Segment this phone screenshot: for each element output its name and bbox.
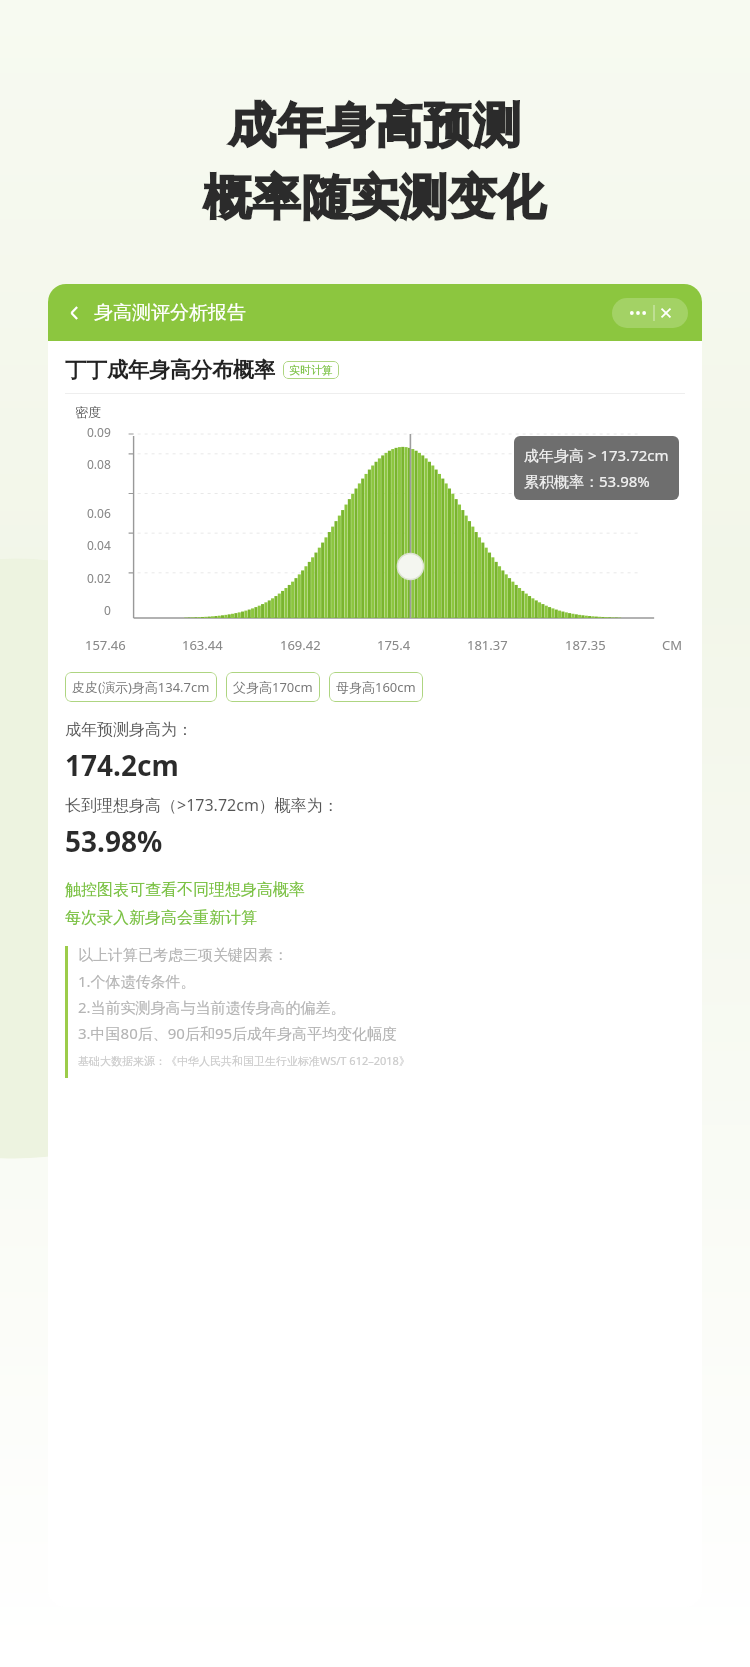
staticText: 成年身高预测 [0,96,750,156]
button[interactable]: More and Close [612,298,688,328]
staticText: 0 [104,602,111,618]
staticText: 身高测评分析报告 [94,301,246,325]
staticText: 父身高170cm [233,678,313,696]
staticText: 2.当前实测身高与当前遗传身高的偏差。 [78,997,346,1017]
staticText: 密度 [75,404,101,420]
staticText: 0.06 [87,505,111,521]
staticText: 175.4 [377,636,411,654]
staticText: 157.46 [85,636,126,654]
staticText: 触控图表可查看不同理想身高概率 [65,880,305,900]
staticText: 概率随实测变化 [0,168,750,228]
staticText: 丁丁成年身高分布概率 [65,357,275,383]
staticText: 0.04 [87,537,111,553]
staticText: 实时计算 [289,363,333,377]
staticText: 53.98% [65,822,163,860]
staticText: 母身高160cm [336,678,416,696]
staticText: 成年身高 > 173.72cm [524,445,669,465]
staticText: 皮皮(演示)身高134.7cm [72,678,210,696]
button[interactable]: 母身高160cm [336,678,416,696]
staticText: 长到理想身高（>173.72cm）概率为： [65,794,339,816]
staticText: 每次录入新身高会重新计算 [65,908,257,928]
button[interactable]: Back [62,300,88,326]
button[interactable]: 父身高170cm [233,678,313,696]
staticText: 3.中国80后、90后和95后成年身高平均变化幅度 [78,1023,398,1043]
staticText: 169.42 [280,636,321,654]
staticText: 1.个体遗传条件。 [78,971,196,991]
staticText: 0.02 [87,570,111,586]
button[interactable]: 实时计算 [289,363,333,377]
staticText: 成年预测身高为： [65,720,193,740]
staticText: 以上计算已考虑三项关键因素： [78,946,288,965]
staticText: 0.09 [87,424,111,440]
staticText: 0.08 [87,456,111,472]
staticText: 174.2cm [65,746,179,784]
staticText: 累积概率：53.98% [524,471,650,491]
staticText: 163.44 [182,636,223,654]
staticText: 基础大数据来源：《中华人民共和国卫生行业标准WS/T 612–2018》 [78,1053,410,1068]
button[interactable]: 皮皮(演示)身高134.7cm [72,678,210,696]
staticText: CM [662,636,683,654]
staticText: 187.35 [565,636,606,654]
staticText: 181.37 [467,636,508,654]
